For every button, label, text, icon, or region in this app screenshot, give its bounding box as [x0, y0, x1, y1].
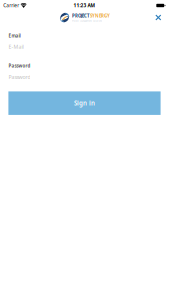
staticText: Password [8, 63, 30, 69]
staticText: Password [8, 73, 30, 80]
staticText: Sign in [74, 99, 95, 107]
staticText: Carrier [3, 2, 19, 9]
staticText: Email [8, 33, 20, 39]
staticText: 11:23 AM [73, 2, 95, 9]
staticText: Project Management Solutions [72, 19, 102, 22]
button[interactable]: Sign in [8, 91, 161, 115]
button[interactable]: Password [8, 63, 161, 80]
staticText: PROJECT [72, 13, 90, 19]
button[interactable]: Close [152, 11, 165, 24]
button[interactable]: Email [8, 33, 161, 50]
staticText: E-Mail [8, 43, 23, 50]
staticText: SYNERGY [90, 13, 110, 19]
